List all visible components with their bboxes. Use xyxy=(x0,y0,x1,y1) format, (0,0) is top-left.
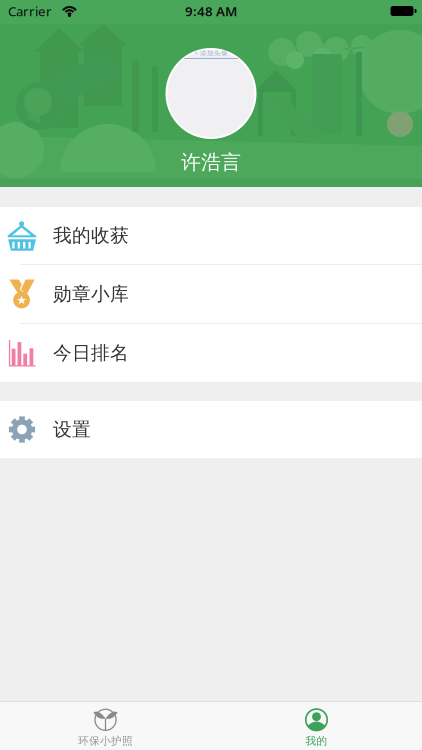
staticText: 今日排名 xyxy=(53,341,129,364)
button[interactable]: 我的收获 xyxy=(0,207,422,264)
button[interactable]: 勋章小库 xyxy=(0,265,422,323)
staticText: 9:48 AM xyxy=(185,2,237,20)
button[interactable]: 今日排名 xyxy=(0,324,422,382)
button[interactable]: 设置 xyxy=(0,401,422,458)
button[interactable]: 环保小护照 xyxy=(0,702,211,750)
button[interactable]: 我的 xyxy=(211,702,422,750)
staticText: Carrier xyxy=(8,2,52,20)
staticText: + 添加头像 xyxy=(194,49,228,57)
staticText: 勋章小库 xyxy=(53,282,129,305)
staticText: 许浩言 xyxy=(181,150,241,175)
staticText: 设置 xyxy=(53,418,91,441)
staticText: 我的 xyxy=(305,734,327,747)
button[interactable]: 添加头像 xyxy=(165,48,256,139)
staticText: 我的收获 xyxy=(53,224,129,247)
staticText: 环保小护照 xyxy=(78,734,133,747)
